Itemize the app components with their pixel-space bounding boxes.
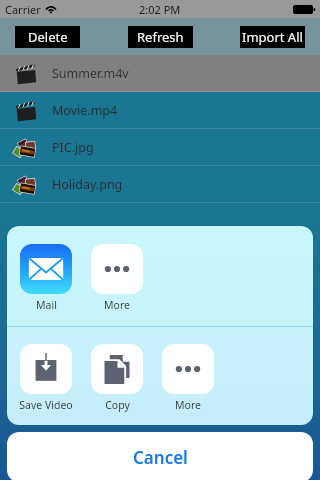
button[interactable]: More (82, 244, 152, 312)
button[interactable]: PIC.jpg (0, 129, 320, 166)
button[interactable]: Delete (15, 26, 80, 48)
staticText: Summer.m4v (52, 65, 129, 82)
staticText: PIC.jpg (52, 139, 94, 156)
staticText: Movie.mp4 (52, 102, 118, 119)
button[interactable]: Movie.mp4 (0, 92, 320, 129)
staticText: Carrier (5, 2, 41, 17)
button[interactable]: Import All (240, 26, 305, 48)
button[interactable]: Cancel (7, 432, 313, 480)
staticText: More (175, 398, 201, 412)
staticText: 2:02 PM (139, 2, 181, 17)
staticText: More (104, 298, 130, 312)
staticText: Delete (28, 28, 68, 46)
button[interactable]: Summer.m4v (0, 55, 320, 92)
staticText: Holiday.png (52, 176, 123, 193)
staticText: Copy (105, 398, 130, 412)
button[interactable]: Holiday.png (0, 166, 320, 203)
staticText: Save Video (19, 398, 73, 412)
button[interactable]: Copy (82, 344, 152, 412)
staticText: Import All (242, 28, 303, 46)
button[interactable]: Save Video (11, 344, 81, 412)
staticText: Refresh (137, 28, 184, 46)
staticText: Mail (36, 298, 57, 312)
staticText: Cancel (133, 446, 188, 469)
button[interactable]: Refresh (128, 26, 193, 48)
button[interactable]: More (153, 344, 223, 412)
button[interactable]: Mail (11, 244, 81, 312)
